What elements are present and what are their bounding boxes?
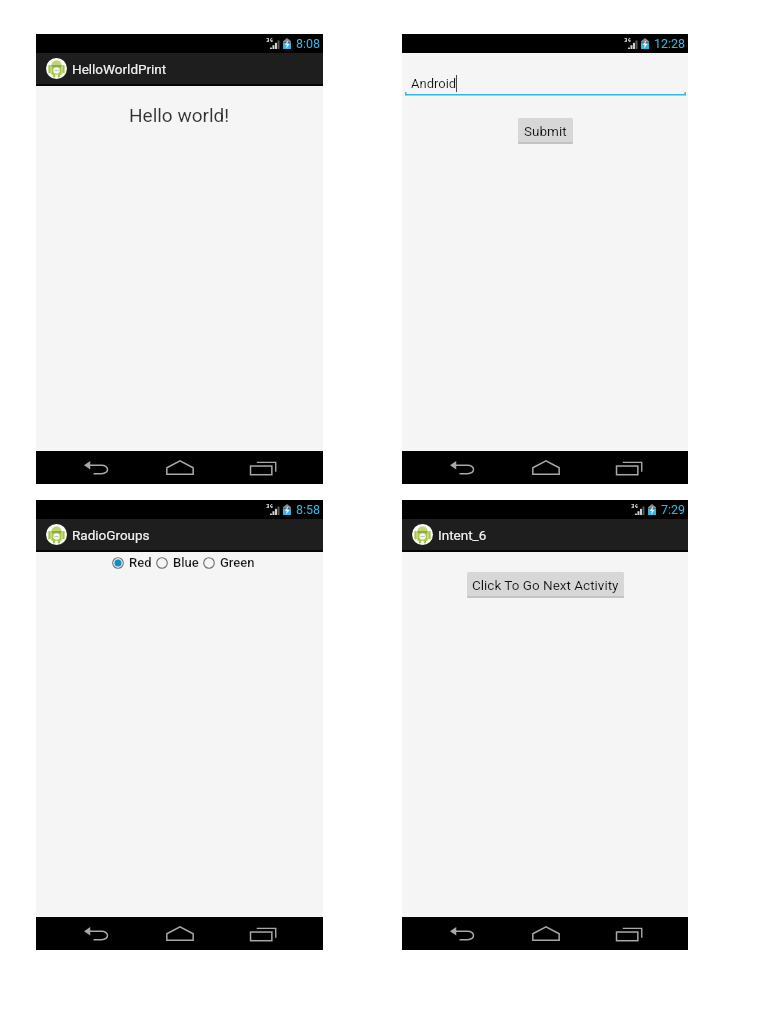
staticText: Intent_6 — [438, 527, 487, 543]
staticText: Android — [411, 76, 457, 91]
button[interactable]: Recent apps — [599, 917, 658, 950]
button[interactable]: Recent apps — [233, 451, 292, 484]
staticText: RadioGroups — [72, 527, 150, 543]
staticText: 12:28 — [654, 36, 686, 51]
staticText: Submit — [524, 123, 567, 139]
button[interactable]: Blue — [154, 555, 201, 570]
button[interactable]: Back — [67, 917, 126, 950]
staticText: 8:08 — [296, 36, 321, 51]
button[interactable]: Red — [110, 555, 154, 570]
staticText: Click To Go Next Activity — [472, 577, 619, 593]
staticText: 7:29 — [661, 502, 686, 517]
button[interactable]: Home — [516, 451, 575, 484]
button[interactable]: Back — [67, 451, 126, 484]
staticText: Hello world! — [129, 104, 230, 126]
staticText: Green — [220, 555, 255, 570]
button[interactable]: Back — [433, 451, 492, 484]
button[interactable]: Home — [150, 917, 209, 950]
button[interactable]: Click To Go Next Activity — [467, 572, 624, 598]
button[interactable]: Recent apps — [233, 917, 292, 950]
staticText: Red — [129, 555, 152, 570]
button[interactable]: Back — [433, 917, 492, 950]
button[interactable]: Submit — [518, 118, 573, 144]
button[interactable]: Home — [150, 451, 209, 484]
staticText: 8:58 — [296, 502, 321, 517]
button[interactable]: Home — [516, 917, 575, 950]
staticText: HelloWorldPrint — [72, 61, 167, 77]
button[interactable]: Recent apps — [599, 451, 658, 484]
button[interactable]: Green — [201, 555, 257, 570]
staticText: Blue — [173, 555, 199, 570]
